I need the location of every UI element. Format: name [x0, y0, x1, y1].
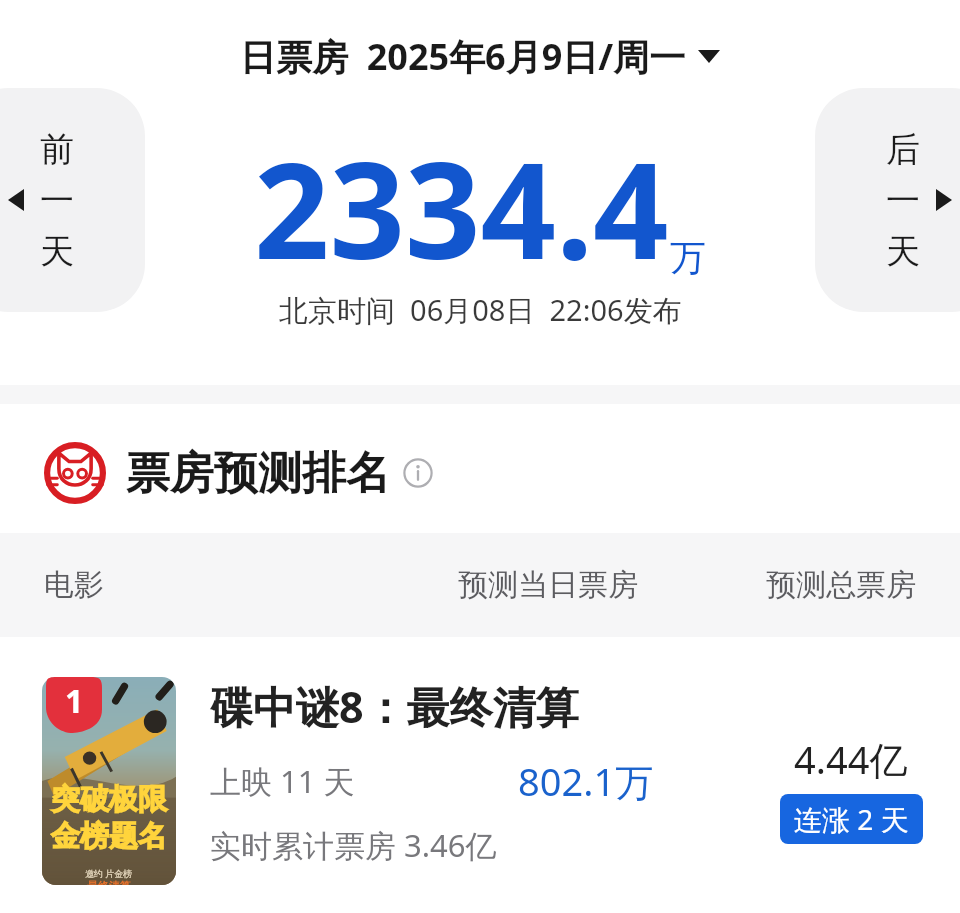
staticText: 预测总票房 [766, 566, 916, 604]
staticText: 一 [40, 179, 74, 222]
staticText: 后 [886, 128, 920, 171]
staticText: 金榜题名 [51, 818, 167, 855]
staticText: 万 [670, 235, 706, 280]
staticText: 天 [40, 230, 74, 273]
staticText: 一 [886, 179, 920, 222]
staticText: 802.1万 [518, 755, 654, 807]
staticText: 1 [65, 679, 84, 723]
staticText: 上映 11 天 [210, 760, 355, 802]
button[interactable]: 说明 [402, 457, 434, 489]
staticText: 预测当日票房 [458, 566, 638, 604]
staticText: 日票房 2025年6月9日/周一 [240, 32, 686, 81]
staticText: 电影 [44, 566, 104, 604]
staticText: 突破极限 [51, 781, 167, 818]
button[interactable]: 日票房 2025年6月9日/周一 [234, 28, 726, 85]
staticText: 碟中谜8：最终清算 [210, 677, 579, 736]
staticText: 前 [40, 128, 74, 171]
staticText: 连涨 2 天 [794, 800, 909, 838]
staticText: 最终清算 [87, 879, 131, 885]
staticText: 邀约 片金榜 [85, 867, 133, 879]
button[interactable]: 后一天 [815, 88, 960, 312]
staticText: 北京时间 06月08日 22:06发布 [279, 290, 682, 330]
staticText: 实时累计票房 3.46亿 [210, 824, 497, 866]
button[interactable]: 前一天 [0, 88, 145, 312]
staticText: 票房预测排名 [126, 446, 390, 501]
staticText: 天 [886, 230, 920, 273]
button[interactable]: 突破极限 [0, 655, 960, 905]
staticText: 4.44亿 [794, 733, 908, 785]
staticText: 2334.4 [254, 118, 669, 298]
